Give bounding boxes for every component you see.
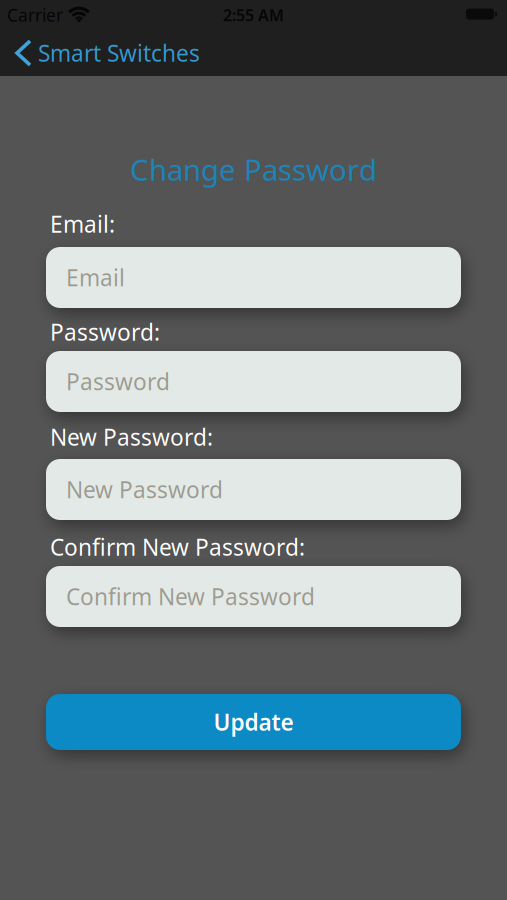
staticText: Change Password (130, 150, 377, 189)
staticText: Confirm New Password (66, 581, 315, 611)
staticText: Carrier (7, 3, 63, 26)
staticText: Smart Switches (38, 38, 200, 68)
staticText: Password: (50, 317, 160, 347)
textField[interactable]: Password (66, 366, 461, 396)
staticText: New Password: (50, 422, 213, 452)
staticText: 2:55 AM (223, 4, 284, 26)
textField[interactable]: New Password (66, 474, 461, 504)
textField[interactable]: Email (66, 262, 461, 292)
textField[interactable]: Confirm New Password (66, 581, 461, 611)
button[interactable]: Smart Switches (0, 38, 200, 68)
staticText: Email: (50, 209, 115, 239)
staticText: Password (66, 366, 170, 396)
staticText: Confirm New Password: (50, 532, 305, 562)
button[interactable]: Update (46, 694, 461, 750)
staticText: New Password (66, 474, 223, 504)
staticText: Email (66, 262, 125, 292)
staticText: Update (213, 707, 293, 737)
